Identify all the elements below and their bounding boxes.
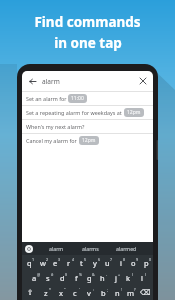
button[interactable]: z: [38, 285, 53, 300]
staticText: u: [105, 258, 110, 268]
button[interactable]: alarmed: [114, 245, 139, 252]
button[interactable]: s: [41, 270, 55, 285]
staticText: 9: [136, 257, 139, 262]
staticText: f: [75, 273, 78, 283]
staticText: ": [64, 287, 66, 292]
staticText: q: [27, 258, 32, 268]
staticText: 3: [58, 257, 61, 262]
button[interactable]: Voice input: [25, 245, 33, 253]
staticText: 12pm: [127, 109, 141, 116]
staticText: 1: [32, 257, 35, 262]
staticText: k: [126, 273, 131, 283]
staticText: -: [106, 272, 108, 277]
button[interactable]: When's my next alarm?: [22, 120, 153, 133]
button[interactable]: ⇧: [23, 285, 38, 300]
staticText: 12pm: [82, 137, 96, 144]
staticText: 11:00: [71, 95, 84, 102]
button[interactable]: t: [75, 255, 88, 270]
button[interactable]: alarm: [47, 245, 66, 252]
staticText: y: [93, 258, 97, 268]
staticText: *: [49, 287, 51, 292]
staticText: i: [120, 258, 122, 268]
staticText: in one tap: [54, 34, 122, 52]
staticText: x: [59, 288, 63, 298]
staticText: alarmed: [116, 245, 137, 252]
button[interactable]: h: [96, 270, 109, 285]
button[interactable]: o: [127, 255, 140, 270]
button[interactable]: v: [82, 285, 96, 300]
button[interactable]: a: [27, 270, 41, 285]
staticText: ?: [134, 287, 136, 292]
staticText: o: [131, 258, 136, 268]
staticText: z: [44, 288, 48, 298]
button[interactable]: d: [55, 270, 69, 285]
button[interactable]: l: [135, 270, 148, 285]
button[interactable]: x: [53, 285, 68, 300]
staticText: +: [118, 272, 121, 277]
button[interactable]: j: [109, 270, 122, 285]
button[interactable]: ⌫: [138, 285, 152, 300]
button[interactable]: Cancel my alarm for: [22, 134, 153, 147]
staticText: j: [115, 273, 117, 283]
staticText: n: [115, 288, 120, 298]
button[interactable]: Set an alarm for: [22, 92, 153, 105]
button[interactable]: b: [96, 285, 110, 300]
button[interactable]: Clear search: [136, 74, 150, 88]
button[interactable]: Set a repeating alarm for weekdays at: [22, 106, 153, 119]
staticText: p: [144, 258, 149, 268]
button[interactable]: w: [36, 255, 49, 270]
staticText: s: [46, 273, 50, 283]
staticText: c: [73, 288, 77, 298]
staticText: :: [93, 287, 94, 292]
staticText: 0: [149, 257, 152, 262]
staticText: alarm: [42, 77, 60, 86]
button[interactable]: y: [88, 255, 101, 270]
button[interactable]: g: [83, 270, 96, 285]
staticText: ⌫: [140, 288, 151, 297]
staticText: %: [79, 272, 82, 277]
staticText: Cancel my alarm for: [26, 137, 79, 144]
staticText: 6: [98, 257, 101, 262]
button[interactable]: q: [22, 255, 36, 270]
staticText: alarms: [82, 245, 99, 252]
staticText: 8: [123, 257, 126, 262]
staticText: l: [141, 273, 143, 283]
staticText: a: [32, 273, 37, 283]
button[interactable]: i: [114, 255, 127, 270]
staticText: 4: [72, 257, 75, 262]
staticText: e: [53, 258, 58, 268]
staticText: 2: [46, 257, 49, 262]
staticText: Set an alarm for: [26, 95, 68, 102]
button[interactable]: k: [122, 270, 135, 285]
staticText: t: [80, 258, 83, 268]
button[interactable]: p: [140, 255, 153, 270]
button[interactable]: Back: [25, 74, 39, 88]
staticText: #: [51, 272, 54, 277]
button[interactable]: m: [124, 285, 138, 300]
staticText: $: [65, 272, 68, 277]
staticText: When's my next alarm?: [26, 123, 85, 130]
staticText: d: [60, 273, 65, 283]
staticText: r: [67, 258, 71, 268]
staticText: h: [100, 273, 105, 283]
button[interactable]: r: [62, 255, 75, 270]
staticText: 7: [110, 257, 113, 262]
button[interactable]: e: [49, 255, 62, 270]
staticText: w: [40, 258, 46, 268]
button[interactable]: f: [69, 270, 83, 285]
staticText: &: [92, 272, 95, 277]
button[interactable]: c: [68, 285, 82, 300]
staticText: 5: [84, 257, 87, 262]
staticText: m: [127, 288, 135, 298]
staticText: ⇧: [27, 288, 34, 297]
button[interactable]: alarms: [80, 245, 101, 252]
button[interactable]: u: [101, 255, 114, 270]
staticText: ): [145, 272, 147, 277]
staticText: alarm: [49, 245, 64, 252]
staticText: Find commands: [34, 13, 141, 31]
staticText: (: [132, 272, 134, 277]
staticText: v: [87, 288, 91, 298]
button[interactable]: n: [110, 285, 124, 300]
staticText: !: [121, 287, 122, 292]
staticText: g: [87, 273, 92, 283]
